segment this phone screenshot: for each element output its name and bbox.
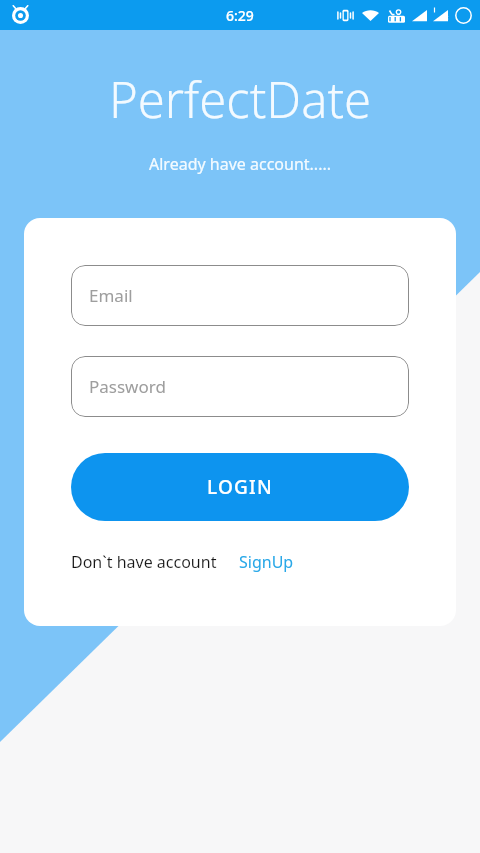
staticText: Don`t have account <box>71 551 217 573</box>
staticText: 6:29 <box>226 6 254 25</box>
button[interactable]: Password <box>71 356 409 417</box>
staticText: SignUp <box>239 551 294 573</box>
other: Debug notification <box>12 7 29 24</box>
staticText: PerfectDate <box>0 66 480 133</box>
staticText: Already have account..... <box>0 153 480 175</box>
button[interactable]: SignUp <box>239 551 294 573</box>
staticText: Password <box>89 375 166 398</box>
staticText: Email <box>89 284 133 307</box>
staticText: LOGIN <box>207 474 273 500</box>
button[interactable]: Don`t have account <box>71 551 217 573</box>
button[interactable]: Email <box>71 265 409 326</box>
button[interactable]: LOGIN <box>71 453 409 521</box>
